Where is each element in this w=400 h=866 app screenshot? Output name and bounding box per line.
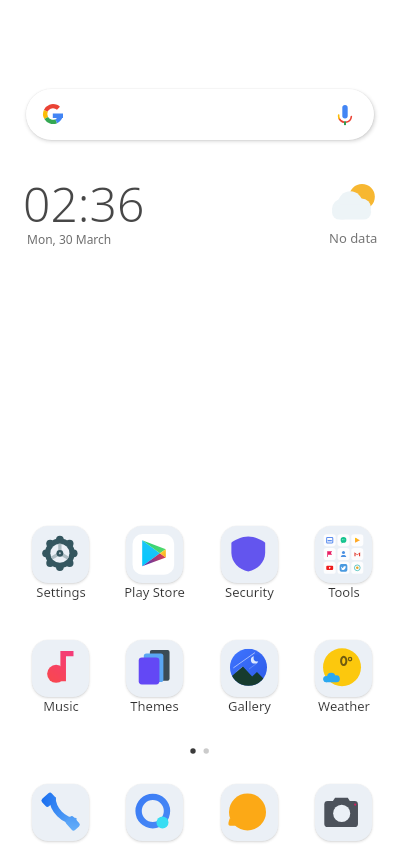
button[interactable]: Phone bbox=[32, 784, 89, 841]
button[interactable]: No data bbox=[322, 186, 384, 247]
button[interactable]: Gallery bbox=[207, 640, 292, 715]
button[interactable]: Search bbox=[26, 89, 374, 140]
staticText: Mon, 30 March bbox=[27, 231, 112, 247]
staticText: Themes bbox=[130, 697, 179, 715]
button[interactable]: Themes bbox=[112, 640, 197, 715]
staticText: Settings bbox=[36, 583, 86, 601]
staticText: Music bbox=[43, 697, 79, 715]
button[interactable]: Messages bbox=[221, 784, 278, 841]
button[interactable]: Tools bbox=[301, 526, 386, 601]
staticText: Security bbox=[225, 583, 274, 601]
button[interactable]: Security bbox=[207, 526, 292, 601]
staticText: Play Store bbox=[124, 583, 185, 601]
button[interactable]: Weather bbox=[301, 640, 386, 715]
button[interactable]: Browser bbox=[126, 784, 183, 841]
button[interactable]: Settings bbox=[18, 526, 103, 601]
staticText: Tools bbox=[328, 583, 360, 601]
button[interactable]: Camera bbox=[315, 784, 372, 841]
staticText: Weather bbox=[318, 697, 370, 715]
staticText: Gallery bbox=[228, 697, 271, 715]
button[interactable]: Music bbox=[18, 640, 103, 715]
staticText: No data bbox=[329, 229, 378, 247]
button[interactable]: Play Store bbox=[112, 526, 197, 601]
button[interactable]: 02:36 bbox=[23, 171, 145, 236]
staticText: 02:36 bbox=[23, 171, 145, 236]
